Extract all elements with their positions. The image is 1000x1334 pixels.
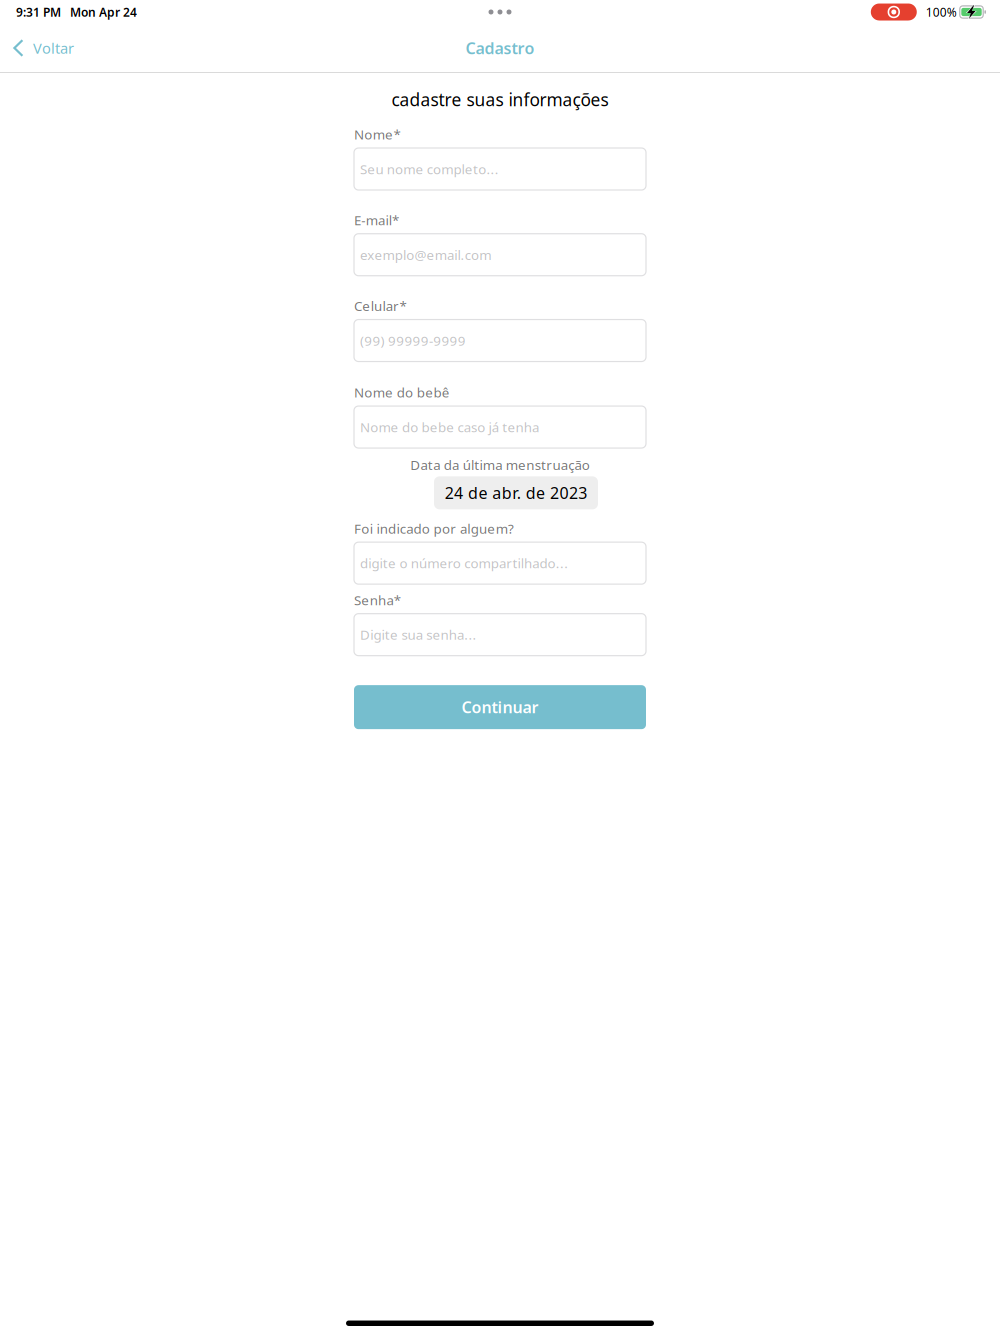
staticText: 9:31 PM xyxy=(16,4,61,20)
staticText: Continuar xyxy=(461,696,538,718)
staticText: (99) 99999-9999 xyxy=(360,332,466,349)
staticText: E-mail* xyxy=(354,211,399,229)
staticText: exemplo@email.com xyxy=(360,246,491,264)
button[interactable]: Voltar xyxy=(0,24,88,72)
staticText: digite o número compartilhado... xyxy=(360,554,568,572)
staticText: Nome* xyxy=(354,125,400,143)
button[interactable]: Nome* xyxy=(354,148,646,190)
button[interactable]: Senha* xyxy=(354,614,646,656)
staticText: Celular* xyxy=(354,297,406,315)
button[interactable]: Continuar xyxy=(354,685,646,729)
staticText: Foi indicado por alguem? xyxy=(354,520,514,537)
staticText: 100% xyxy=(926,4,957,20)
staticText: cadastre suas informações xyxy=(391,88,608,111)
staticText: Cadastro xyxy=(465,37,534,59)
staticText: Data da última menstruação xyxy=(410,456,590,474)
staticText: Voltar xyxy=(33,38,74,58)
staticText: Senha* xyxy=(354,591,401,609)
staticText: Nome do bebe caso já tenha xyxy=(360,418,539,436)
staticText: Nome do bebê xyxy=(354,383,450,401)
staticText: 24 de abr. de 2023 xyxy=(445,482,587,503)
button[interactable]: Foi indicado por alguem? xyxy=(354,542,646,584)
button[interactable]: Celular* xyxy=(354,319,646,361)
button[interactable]: E-mail* xyxy=(354,234,646,276)
staticText: Digite sua senha... xyxy=(360,626,476,643)
staticText: Mon Apr 24 xyxy=(70,4,137,20)
button[interactable]: Nome do bebê xyxy=(354,406,646,448)
staticText: Seu nome completo... xyxy=(360,160,499,178)
button[interactable]: Data da última menstruação, 24 de abr. d… xyxy=(434,476,598,509)
